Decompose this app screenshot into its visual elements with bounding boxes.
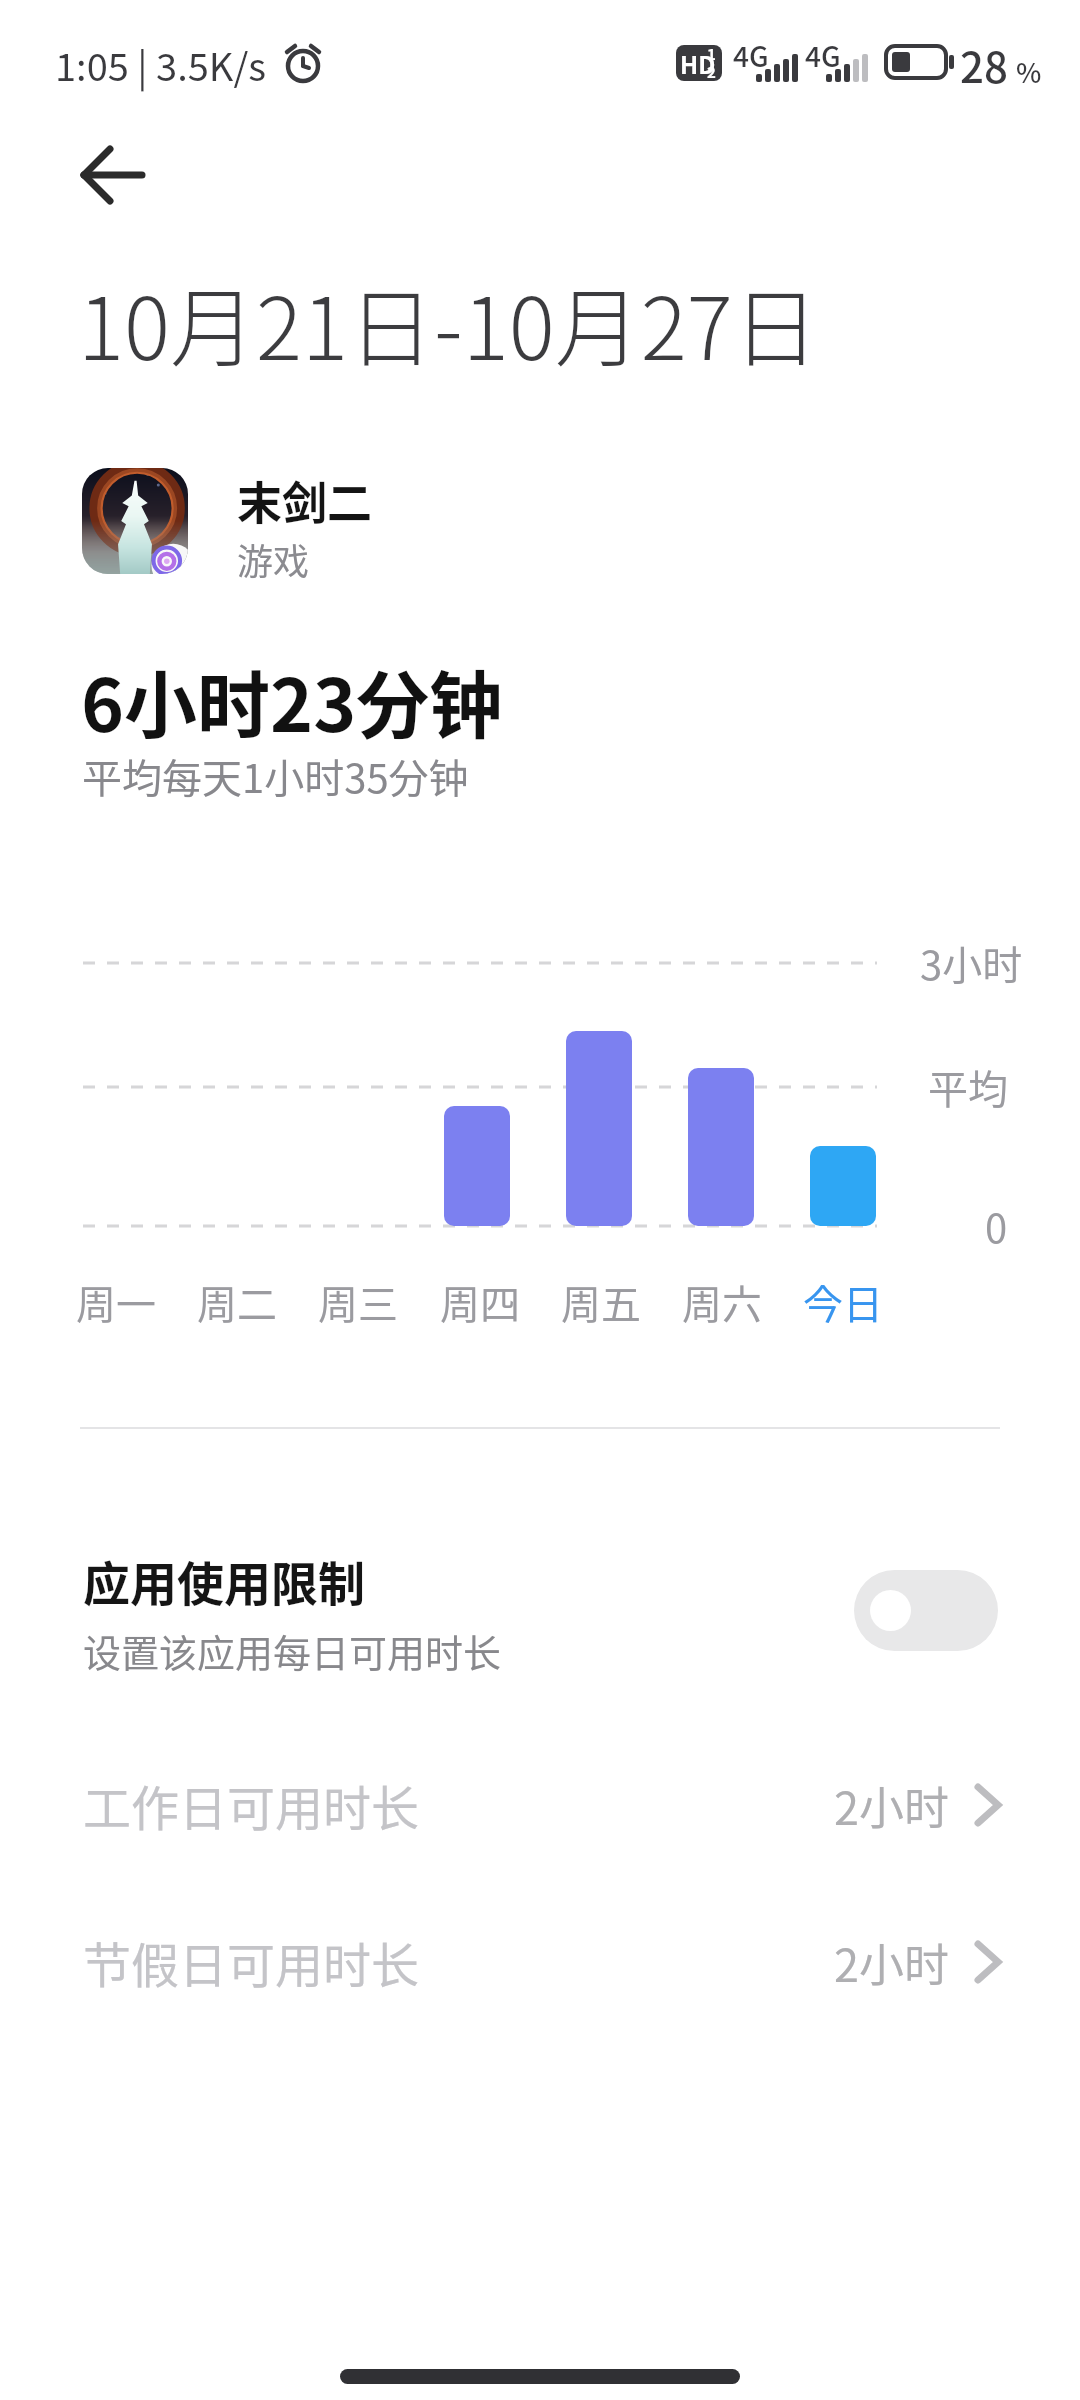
staticText: 平均每天1小时35分钟 bbox=[82, 747, 469, 805]
button[interactable]: 周三 bbox=[308, 1272, 408, 1332]
staticText: 1:05 | 3.5K/s bbox=[55, 37, 267, 92]
button[interactable]: 节假日可用时长 bbox=[0, 1902, 1080, 2022]
staticText: 2 bbox=[707, 61, 716, 83]
staticText: 周三 bbox=[318, 1273, 398, 1331]
staticText: 节假日可用时长 bbox=[83, 1927, 420, 1997]
staticText: 2小时 bbox=[834, 1930, 949, 1995]
staticText: % bbox=[1016, 52, 1042, 91]
staticText: 工作日可用时长 bbox=[83, 1770, 420, 1840]
staticText: 应用使用限制 bbox=[83, 1546, 365, 1614]
staticText: 末剑二 bbox=[237, 468, 373, 533]
staticText: 游戏 bbox=[237, 533, 310, 585]
staticText: 0 bbox=[985, 1197, 1008, 1255]
staticText: 周五 bbox=[561, 1273, 641, 1331]
staticText: 设置该应用每日可用时长 bbox=[83, 1623, 502, 1678]
staticText: 周四 bbox=[440, 1273, 520, 1331]
button[interactable]: 周五 bbox=[551, 1272, 651, 1332]
staticText: 28 bbox=[960, 34, 1008, 95]
button[interactable] bbox=[82, 468, 188, 574]
staticText: 10月21日-10月27日 bbox=[78, 260, 819, 385]
staticText: 平均 bbox=[928, 1058, 1008, 1116]
button[interactable]: 应用使用限制 bbox=[0, 1540, 1080, 1680]
staticText: 4G bbox=[805, 35, 841, 76]
staticText: 今日 bbox=[803, 1273, 883, 1331]
button[interactable]: 周四 bbox=[430, 1272, 530, 1332]
staticText: HD bbox=[680, 46, 716, 81]
staticText: 周二 bbox=[197, 1273, 277, 1331]
staticText: 6小时23分钟 bbox=[81, 647, 503, 753]
button[interactable]: 周二 bbox=[187, 1272, 287, 1332]
staticText: 周一 bbox=[76, 1273, 156, 1331]
button[interactable]: 工作日可用时长 bbox=[0, 1745, 1080, 1865]
staticText: 2小时 bbox=[834, 1773, 949, 1838]
staticText: 周六 bbox=[682, 1273, 762, 1331]
button[interactable]: 周六 bbox=[672, 1272, 772, 1332]
button[interactable]: 今日 bbox=[793, 1272, 893, 1332]
button[interactable]: 周一 bbox=[66, 1272, 166, 1332]
staticText: 3小时 bbox=[920, 934, 1023, 992]
staticText: 1 bbox=[707, 43, 716, 65]
button[interactable] bbox=[70, 140, 150, 210]
staticText: 4G bbox=[733, 35, 769, 76]
